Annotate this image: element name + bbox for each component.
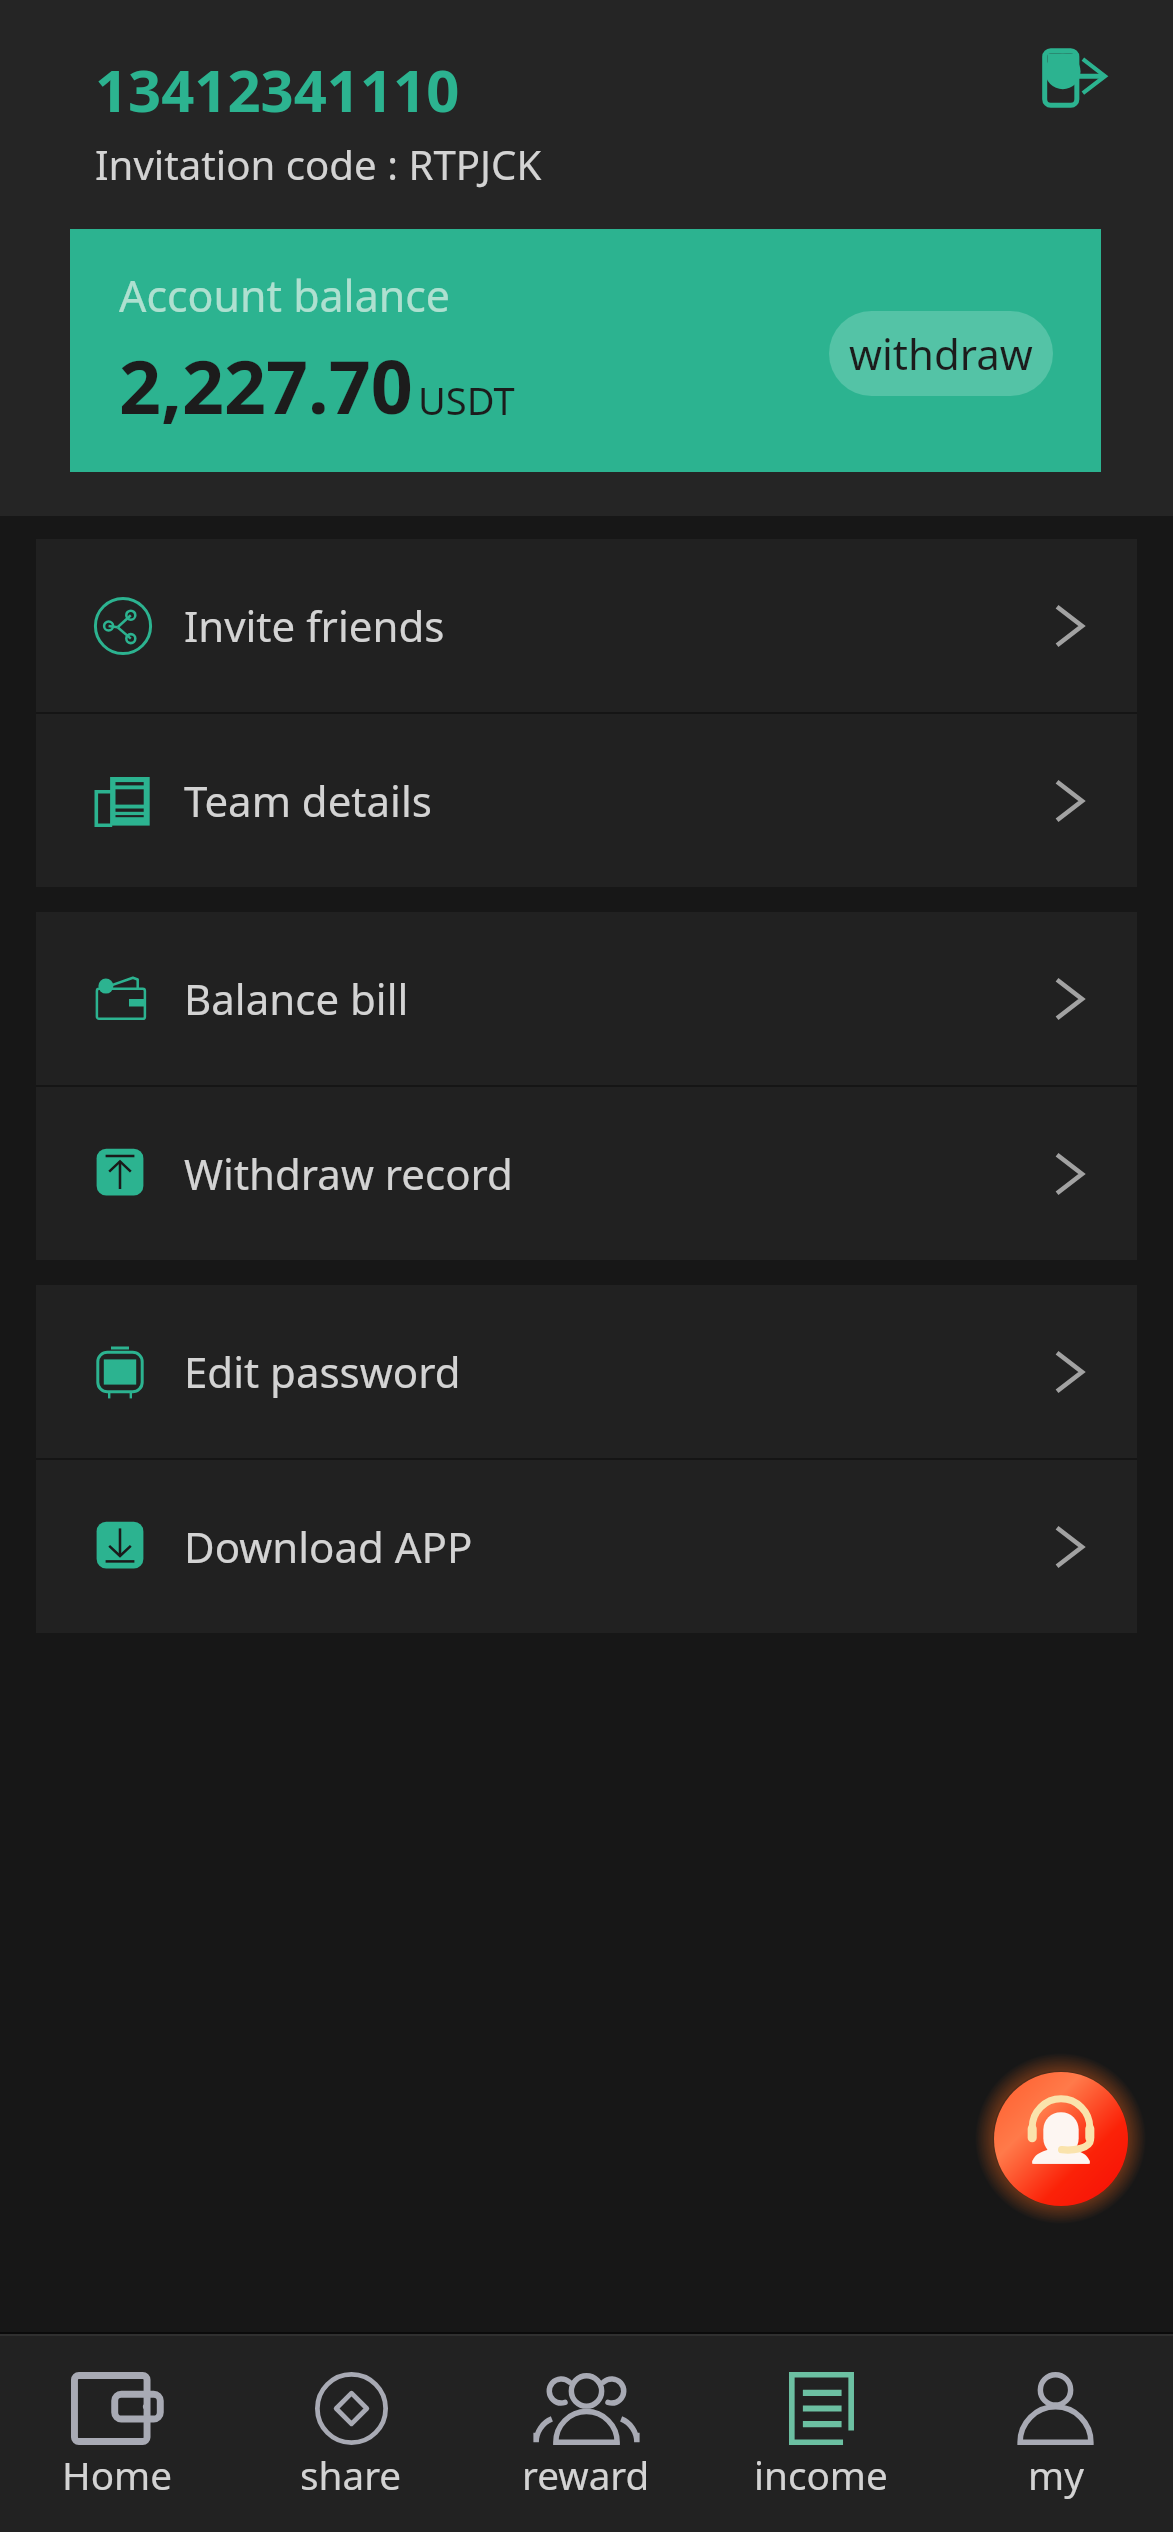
button[interactable]: Invite friends xyxy=(36,539,1137,712)
staticText: Download APP xyxy=(184,1518,473,1575)
staticText: Invitation code : RTPJCK xyxy=(95,137,542,192)
button[interactable]: Download APP xyxy=(36,1460,1137,1633)
staticText: Account balance xyxy=(119,266,451,324)
button[interactable]: Withdraw record xyxy=(36,1087,1137,1260)
staticText: Team details xyxy=(184,772,432,829)
staticText: USDT xyxy=(418,374,515,426)
button[interactable]: share xyxy=(234,2336,468,2529)
staticText: withdraw xyxy=(849,325,1033,382)
button[interactable]: Log out xyxy=(1035,39,1113,117)
button[interactable]: Team details xyxy=(36,714,1137,887)
staticText: share xyxy=(300,2449,402,2502)
button[interactable]: my xyxy=(938,2336,1173,2529)
staticText: income xyxy=(754,2449,888,2502)
staticText: 2,227.70 xyxy=(119,335,413,435)
staticText: Edit password xyxy=(184,1343,461,1400)
button[interactable]: Edit password xyxy=(36,1285,1137,1458)
staticText: Invite friends xyxy=(184,597,445,654)
button[interactable]: Balance bill xyxy=(36,912,1137,1085)
staticText: reward xyxy=(522,2449,650,2502)
staticText: Home xyxy=(62,2449,173,2502)
staticText: my xyxy=(1028,2449,1084,2502)
staticText: Withdraw record xyxy=(184,1145,513,1202)
button[interactable]: income xyxy=(703,2336,938,2529)
staticText: 13412341110 xyxy=(95,50,460,129)
button[interactable]: Customer service xyxy=(994,2072,1128,2206)
staticText: Balance bill xyxy=(184,970,409,1027)
button[interactable]: withdraw xyxy=(829,311,1053,396)
button[interactable]: Home xyxy=(0,2336,234,2529)
button[interactable]: reward xyxy=(468,2336,703,2529)
